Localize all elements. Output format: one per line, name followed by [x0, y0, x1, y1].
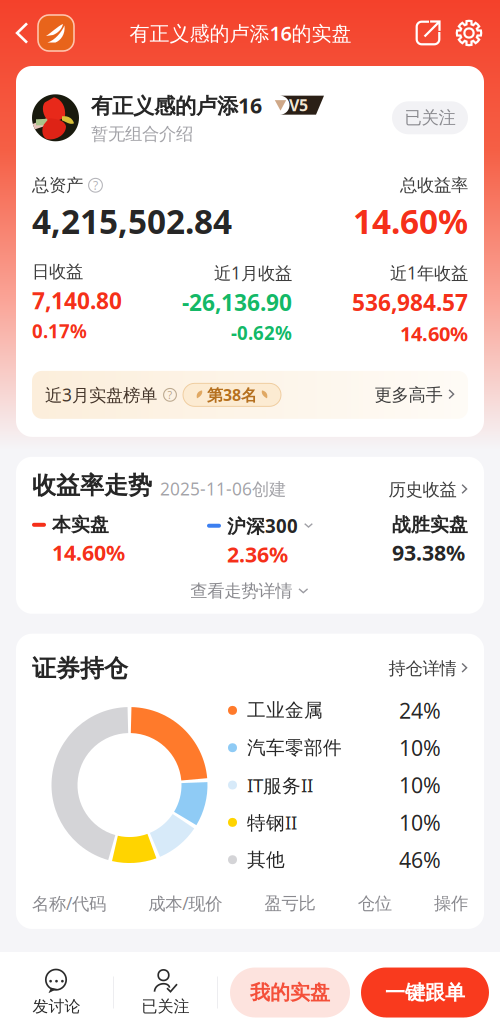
staticText: 10% — [399, 771, 441, 799]
staticText: ? — [167, 388, 172, 402]
staticText: 有正义感的卢添16 — [91, 91, 262, 119]
staticText: 0.17% — [32, 319, 87, 343]
button[interactable]: 历史收益 — [388, 479, 468, 500]
staticText: 历史收益 — [388, 479, 456, 500]
staticText: 总资产 — [32, 175, 83, 196]
staticText: 日收益 — [32, 261, 83, 282]
button[interactable]: 一键跟单 — [361, 967, 489, 1017]
staticText: 更多高手 — [374, 384, 442, 405]
staticText: 2025-11-06创建 — [160, 477, 286, 500]
button[interactable]: 我的实盘 — [230, 967, 350, 1017]
staticText: 4,215,502.84 — [32, 199, 232, 243]
staticText: 近1月收益 — [214, 261, 292, 284]
staticText: 已关注 — [141, 997, 189, 1016]
staticText: 查看走势详情 — [190, 580, 292, 602]
staticText: V5 — [289, 94, 308, 116]
button[interactable]: 发讨论 — [0, 962, 113, 1022]
button[interactable]: 查看走势详情 — [16, 568, 484, 614]
staticText: 特钢II — [247, 810, 297, 835]
staticText: 发讨论 — [32, 997, 80, 1016]
staticText: 有正义感的卢添16的实盘 — [129, 20, 351, 46]
staticText: 已关注 — [404, 107, 455, 128]
staticText: 名称/代码 — [32, 892, 106, 915]
staticText: ? — [93, 177, 98, 193]
button[interactable]: 持仓详情 — [388, 658, 468, 679]
button[interactable]: Settings — [449, 11, 489, 55]
staticText: 仓位 — [358, 893, 392, 914]
button[interactable]: 已关注 — [392, 101, 468, 134]
staticText: 汽车零部件 — [247, 736, 342, 759]
staticText: 10% — [399, 734, 441, 762]
staticText: 一键跟单 — [385, 980, 465, 1005]
staticText: 536,984.57 — [352, 287, 468, 317]
staticText: 战胜实盘 — [392, 513, 468, 536]
button[interactable]: 近3月实盘榜单 — [16, 347, 484, 437]
staticText: 第38名 — [207, 384, 257, 405]
staticText: IT服务II — [247, 773, 313, 797]
staticText: 我的实盘 — [250, 980, 330, 1005]
staticText: 本实盘 — [52, 513, 109, 536]
staticText: -0.62% — [231, 320, 292, 345]
staticText: 其他 — [247, 848, 285, 871]
staticText: 成本/现价 — [148, 892, 222, 915]
staticText: 14.60% — [400, 320, 468, 347]
staticText: 近3月实盘榜单 — [45, 383, 157, 406]
button[interactable]: 已关注 — [114, 962, 217, 1022]
staticText: 收益率走势 — [32, 471, 152, 500]
staticText: 2.36% — [227, 540, 288, 568]
staticText: 24% — [399, 696, 441, 724]
staticText: 操作 — [434, 893, 468, 914]
staticText: 盈亏比 — [264, 893, 315, 914]
staticText: 总收益率 — [400, 175, 468, 196]
staticText: 持仓详情 — [388, 658, 456, 679]
staticText: 7,140.80 — [32, 285, 122, 316]
staticText: 证券持仓 — [32, 654, 128, 683]
staticText: 暂无组合介绍 — [91, 123, 193, 145]
staticText: 近1年收益 — [390, 261, 468, 284]
staticText: 46% — [399, 845, 441, 874]
staticText: -26,136.90 — [182, 287, 292, 317]
staticText: 工业金属 — [247, 699, 323, 722]
staticText: 10% — [399, 808, 441, 836]
staticText: 沪深300 — [227, 513, 298, 538]
staticText: 14.60% — [52, 538, 125, 567]
staticText: 93.38% — [392, 538, 465, 567]
button[interactable]: Back — [6, 11, 38, 55]
button[interactable]: Share — [407, 11, 449, 55]
staticText: 14.60% — [353, 199, 468, 243]
